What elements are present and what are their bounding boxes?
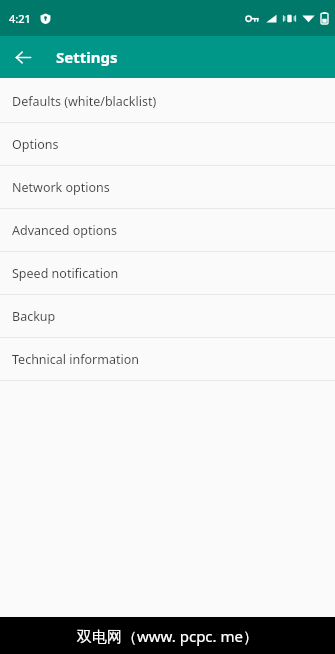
staticText: Options — [12, 136, 59, 153]
button[interactable]: Defaults (white/blacklist) — [0, 80, 335, 122]
staticText: Advanced options — [12, 222, 118, 239]
staticText: Speed notification — [12, 265, 119, 282]
staticText: 双电网（www. pcpc. me） — [77, 626, 258, 646]
button[interactable]: Advanced options — [0, 209, 335, 251]
button[interactable]: Network options — [0, 166, 335, 208]
button[interactable]: Options — [0, 123, 335, 165]
staticText: Backup — [12, 308, 56, 325]
button[interactable]: Back — [8, 42, 38, 72]
staticText: Network options — [12, 179, 110, 196]
staticText: Defaults (white/blacklist) — [12, 93, 157, 110]
staticText: 4:21 — [9, 11, 31, 26]
staticText: Settings — [56, 47, 118, 67]
button[interactable]: Backup — [0, 295, 335, 337]
button[interactable]: Technical information — [0, 338, 335, 380]
button[interactable]: Speed notification — [0, 252, 335, 294]
staticText: Technical information — [12, 351, 139, 368]
